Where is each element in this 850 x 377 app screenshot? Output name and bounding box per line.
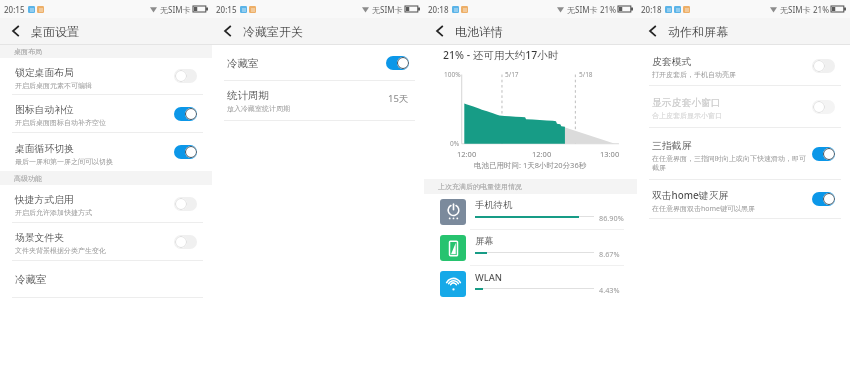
- staticText: 动作和屏幕: [668, 24, 728, 39]
- staticText: 开启后桌面元素不可编辑: [15, 81, 92, 90]
- staticText: 桌面布局: [14, 47, 42, 56]
- button[interactable]: Back: [424, 18, 455, 44]
- staticText: 4.43%: [599, 285, 620, 295]
- staticText: 场景文件夹: [15, 232, 64, 244]
- button[interactable]: 快捷方式启用: [0, 185, 212, 223]
- staticText: 20:18: [428, 4, 449, 15]
- staticText: 21%: [813, 4, 829, 15]
- staticText: 无SIM卡: [372, 4, 403, 15]
- staticText: 86.90%: [599, 213, 624, 223]
- staticText: 20:15: [216, 4, 237, 15]
- button[interactable]: 冷藏室: [0, 261, 212, 298]
- button[interactable]: 图标自动补位: [0, 95, 212, 133]
- staticText: 三指截屏: [652, 140, 692, 152]
- button[interactable]: 手机待机: [424, 194, 637, 230]
- staticText: 图标自动补位: [15, 104, 74, 116]
- staticText: 在任意界面，三指同时向上或向下快速滑动，即可截屏: [652, 154, 806, 172]
- staticText: 桌面循环切换: [15, 143, 74, 155]
- staticText: 统计周期: [227, 89, 269, 102]
- staticText: 无SIM卡: [567, 4, 598, 15]
- button[interactable]: 锁定桌面布局: [0, 58, 212, 95]
- button[interactable]: 场景文件夹: [0, 223, 212, 261]
- staticText: 打开皮套后，手机自动亮屏: [652, 70, 736, 79]
- staticText: 100%: [444, 70, 461, 79]
- button[interactable]: 显示皮套小窗口: [637, 86, 850, 128]
- staticText: 放入冷藏室统计周期: [227, 104, 290, 113]
- staticText: 上次充满后的电量使用情况: [438, 182, 522, 191]
- button[interactable]: 冷藏室: [212, 46, 424, 81]
- staticText: 无SIM卡: [780, 4, 811, 15]
- staticText: 12:00: [532, 149, 552, 159]
- button[interactable]: Back: [0, 18, 31, 44]
- staticText: 0%: [450, 139, 460, 148]
- staticText: 冷藏室: [227, 57, 259, 70]
- staticText: 20:15: [4, 4, 25, 15]
- staticText: 锁定桌面布局: [15, 67, 74, 79]
- staticText: 皮套模式: [652, 56, 692, 68]
- staticText: 冷藏室开关: [243, 24, 303, 39]
- staticText: 最后一屏和第一屏之间可以切换: [15, 157, 113, 166]
- staticText: 在任意界面双击home键可以黑屏: [652, 204, 756, 214]
- staticText: 屏幕: [475, 235, 494, 247]
- staticText: 21% - 还可用大约17小时: [443, 48, 559, 62]
- staticText: 冷藏室: [15, 273, 47, 286]
- staticText: 20:18: [641, 4, 662, 15]
- button[interactable]: Back: [637, 18, 668, 44]
- staticText: 合上皮套后显示小窗口: [652, 111, 722, 120]
- staticText: 双击home键灭屏: [652, 189, 729, 202]
- staticText: 开启后桌面图标自动补齐空位: [15, 118, 106, 127]
- staticText: 桌面设置: [31, 24, 79, 39]
- staticText: 无SIM卡: [160, 4, 191, 15]
- staticText: 文件夹背景根据分类产生变化: [15, 246, 106, 255]
- staticText: 12:00: [457, 149, 477, 159]
- staticText: 21%: [600, 4, 616, 15]
- button[interactable]: Back: [212, 18, 243, 44]
- staticText: 5/17: [505, 70, 519, 79]
- button[interactable]: 统计周期: [212, 81, 424, 121]
- button[interactable]: 屏幕: [424, 230, 637, 266]
- staticText: 15天: [388, 92, 409, 105]
- staticText: WLAN: [475, 271, 503, 284]
- staticText: 8.67%: [599, 249, 620, 259]
- button[interactable]: 双击home键灭屏: [637, 180, 850, 219]
- staticText: 高级功能: [14, 174, 42, 183]
- staticText: 显示皮套小窗口: [652, 97, 721, 109]
- staticText: 手机待机: [475, 199, 513, 211]
- staticText: 5/18: [579, 70, 593, 79]
- button[interactable]: 皮套模式: [637, 46, 850, 86]
- staticText: 开启后允许添加快捷方式: [15, 208, 92, 217]
- staticText: 电池已用时间: 1天8小时20分36秒: [474, 160, 587, 170]
- staticText: 快捷方式启用: [15, 194, 74, 206]
- staticText: 13:00: [600, 149, 620, 159]
- button[interactable]: 三指截屏: [637, 128, 850, 180]
- button[interactable]: WLAN: [424, 266, 637, 302]
- button[interactable]: 桌面循环切换: [0, 133, 212, 171]
- staticText: 电池详情: [455, 24, 503, 39]
